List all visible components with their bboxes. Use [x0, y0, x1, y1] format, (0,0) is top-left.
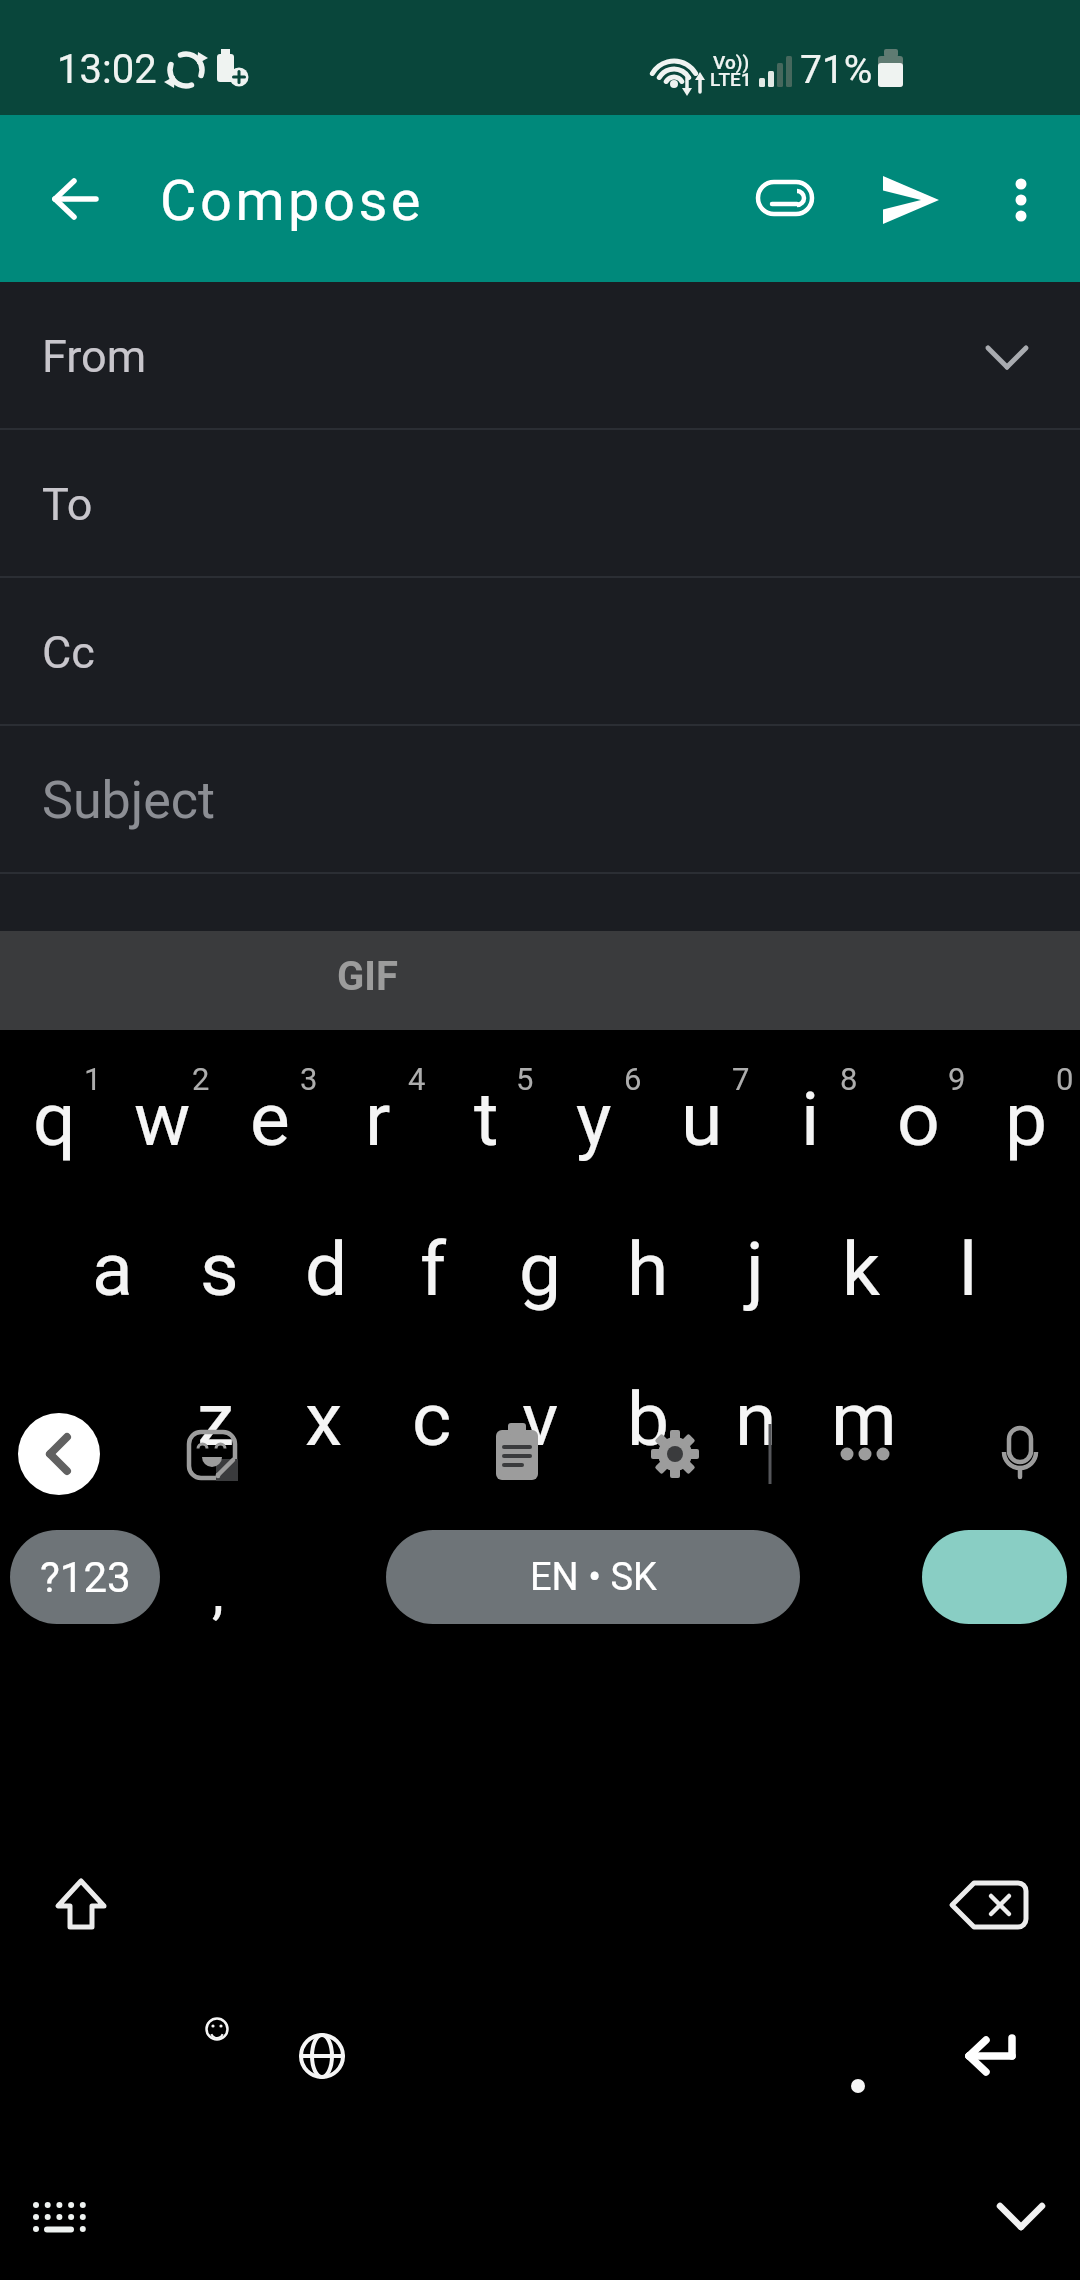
staticText: q: [33, 1075, 76, 1163]
staticText: r: [365, 1075, 391, 1163]
staticText: 7: [732, 1061, 750, 1097]
staticText: ?123: [40, 1553, 131, 1602]
button[interactable]: z: [162, 1352, 270, 1502]
button[interactable]: p: [972, 1052, 1080, 1202]
staticText: h: [627, 1225, 669, 1313]
staticText: Vo)): [713, 51, 750, 73]
button[interactable]: i: [756, 1052, 864, 1202]
staticText: 0: [1056, 1061, 1074, 1097]
button[interactable]: ?123: [10, 1530, 160, 1624]
button[interactable]: a: [58, 1202, 166, 1352]
button[interactable]: Subject: [0, 726, 1080, 874]
staticText: n: [735, 1375, 777, 1463]
staticText: d: [305, 1225, 348, 1313]
staticText: EN • SK: [530, 1555, 657, 1600]
staticText: t: [474, 1075, 499, 1163]
staticText: 3: [300, 1061, 318, 1097]
button[interactable]: m: [810, 1352, 918, 1502]
button[interactable]: f: [380, 1202, 487, 1352]
button[interactable]: r: [324, 1052, 432, 1202]
staticText: m: [831, 1375, 897, 1463]
staticText: Subject: [42, 770, 215, 831]
button[interactable]: e: [216, 1052, 324, 1202]
button[interactable]: v: [486, 1352, 594, 1502]
button[interactable]: u: [648, 1052, 756, 1202]
staticText: g: [519, 1225, 562, 1313]
button[interactable]: t: [432, 1052, 540, 1202]
staticText: a: [92, 1225, 133, 1313]
button[interactable]: s: [166, 1202, 273, 1352]
button[interactable]: Cc: [0, 578, 1080, 726]
staticText: x: [305, 1375, 343, 1463]
staticText: u: [681, 1075, 723, 1163]
staticText: e: [250, 1075, 290, 1163]
button[interactable]: j: [701, 1202, 808, 1352]
staticText: z: [197, 1375, 235, 1463]
staticText: y: [576, 1075, 612, 1163]
staticText: 71%: [800, 47, 873, 93]
button[interactable]: g: [487, 1202, 594, 1352]
button[interactable]: [967, 145, 1075, 253]
button[interactable]: d: [273, 1202, 380, 1352]
staticText: From: [42, 330, 147, 383]
staticText: l: [959, 1225, 978, 1313]
button[interactable]: [918, 1352, 1080, 1502]
button[interactable]: [313, 931, 421, 1030]
staticText: k: [842, 1225, 881, 1313]
staticText: Cc: [42, 626, 95, 679]
staticText: LTE1: [710, 68, 752, 90]
staticText: 2: [192, 1061, 210, 1097]
button[interactable]: l: [915, 1202, 1022, 1352]
button[interactable]: o: [864, 1052, 972, 1202]
button[interactable]: [0, 1352, 162, 1502]
staticText: 5: [516, 1061, 534, 1097]
button[interactable]: w: [108, 1052, 216, 1202]
button[interactable]: [21, 145, 129, 253]
staticText: i: [801, 1075, 820, 1163]
staticText: Compose e-mail: [42, 928, 397, 985]
button[interactable]: [857, 145, 965, 253]
button[interactable]: y: [540, 1052, 648, 1202]
staticText: GIF: [337, 953, 398, 1000]
button[interactable]: EN • SK: [386, 1530, 800, 1624]
button[interactable]: [731, 145, 839, 253]
staticText: 1: [84, 1061, 102, 1097]
staticText: 6: [624, 1061, 642, 1097]
button[interactable]: From: [0, 282, 1080, 430]
staticText: s: [200, 1225, 239, 1313]
button[interactable]: To: [0, 430, 1080, 578]
button[interactable]: [922, 1530, 1067, 1624]
staticText: j: [746, 1225, 764, 1313]
staticText: 13:02: [57, 46, 157, 93]
button[interactable]: ,: [164, 1502, 272, 1652]
button[interactable]: q: [0, 1052, 108, 1202]
button[interactable]: n: [702, 1352, 810, 1502]
button[interactable]: h: [594, 1202, 701, 1352]
button[interactable]: b: [594, 1352, 702, 1502]
staticText: To: [42, 478, 93, 531]
button[interactable]: c: [378, 1352, 486, 1502]
staticText: ,: [212, 1556, 224, 1626]
staticText: 8: [840, 1061, 858, 1097]
staticText: o: [897, 1075, 940, 1163]
staticText: f: [420, 1225, 447, 1313]
button[interactable]: x: [270, 1352, 378, 1502]
staticText: 4: [408, 1061, 426, 1097]
staticText: v: [522, 1375, 559, 1463]
button[interactable]: k: [808, 1202, 915, 1352]
staticText: b: [627, 1375, 670, 1463]
staticText: 9: [948, 1061, 966, 1097]
staticText: c: [412, 1375, 452, 1463]
staticText: p: [1005, 1075, 1048, 1163]
